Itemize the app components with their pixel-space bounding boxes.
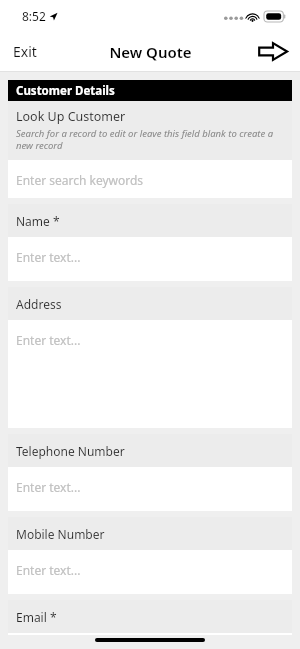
button[interactable]: Name *	[8, 204, 292, 237]
staticText: Email *	[16, 609, 57, 625]
staticText: Enter text...	[16, 332, 81, 348]
staticText: Enter search keywords	[16, 172, 144, 188]
button[interactable]: Mobile Number	[8, 517, 292, 550]
staticText: Exit	[13, 42, 37, 61]
staticText: 8:52	[22, 8, 46, 24]
staticText: Address	[16, 296, 62, 312]
button[interactable]: Enter search keywords	[8, 160, 292, 198]
button[interactable]: Look Up Customer	[8, 101, 292, 160]
button[interactable]: Telephone Number	[8, 434, 292, 467]
button[interactable]: Enter text...	[8, 237, 292, 281]
button[interactable]: Address	[8, 287, 292, 320]
staticText: Mobile Number	[16, 526, 105, 542]
button[interactable]: Enter text...	[8, 467, 292, 511]
staticText: Telephone Number	[16, 443, 125, 459]
staticText: Search for a record to edit or leave thi…	[16, 127, 282, 152]
button[interactable]: Enter text...	[8, 320, 292, 428]
staticText: Look Up Customer	[16, 108, 126, 125]
button[interactable]: Enter text...	[8, 550, 292, 594]
staticText: Name *	[16, 213, 60, 229]
button[interactable]: Exit	[0, 34, 50, 69]
button[interactable]: Email *	[8, 600, 292, 633]
staticText: Enter text...	[16, 479, 81, 495]
staticText: Enter text...	[16, 249, 81, 265]
staticText: Enter text...	[16, 562, 81, 578]
button[interactable]: Next	[246, 35, 300, 68]
staticText: New Quote	[109, 42, 192, 62]
staticText: Customer Details	[16, 83, 115, 99]
